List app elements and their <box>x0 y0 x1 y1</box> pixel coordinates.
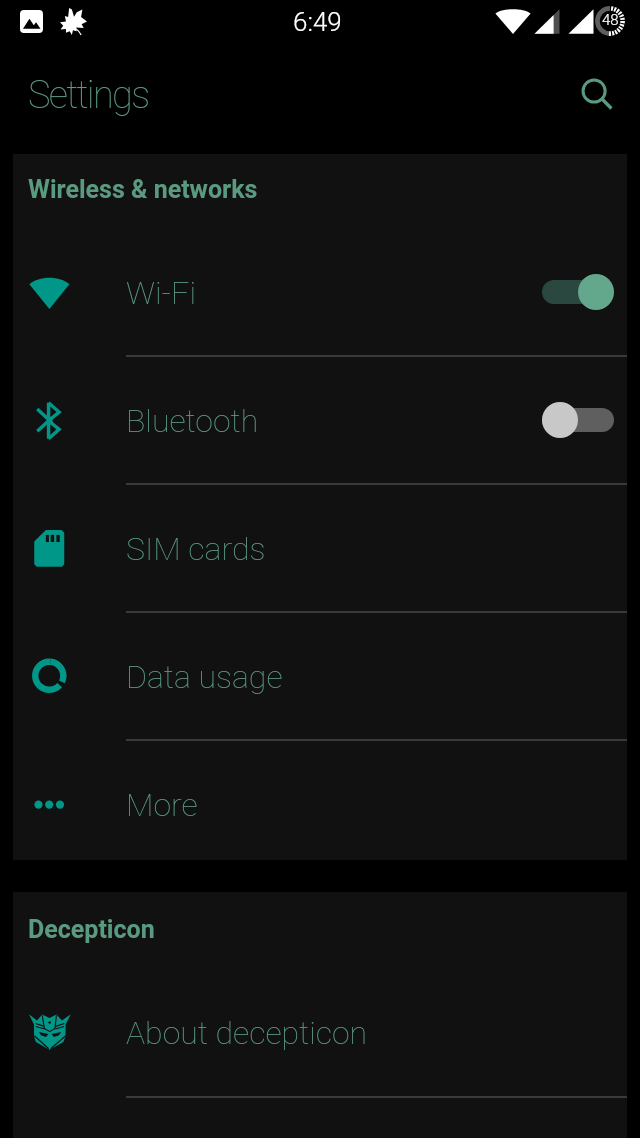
staticText: 6:49 <box>293 7 342 37</box>
staticText: Data usage <box>126 658 283 696</box>
staticText: Wi-Fi <box>126 274 196 312</box>
button[interactable]: SIM cards <box>13 484 627 612</box>
button[interactable]: Search <box>574 72 622 120</box>
button[interactable] <box>542 272 614 312</box>
staticText: 48 <box>602 11 619 29</box>
staticText: More <box>126 786 198 824</box>
staticText: SIM cards <box>126 530 266 568</box>
staticText: Wireless & networks <box>28 175 258 204</box>
staticText: Settings <box>28 73 149 118</box>
button[interactable]: About decepticon <box>13 968 627 1096</box>
button[interactable]: More <box>13 740 627 860</box>
button[interactable]: Wi-Fi <box>13 228 627 356</box>
button[interactable]: Bluetooth <box>13 356 627 484</box>
staticText: Decepticon <box>28 915 155 944</box>
staticText: About decepticon <box>126 1014 368 1052</box>
button[interactable]: Data usage <box>13 612 627 740</box>
button[interactable] <box>542 400 614 440</box>
staticText: Bluetooth <box>126 402 259 440</box>
